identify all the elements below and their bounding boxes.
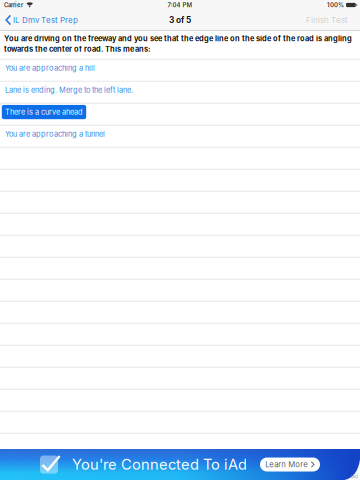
staticText: 100% <box>327 1 344 9</box>
staticText: IL Dmv Test Prep <box>13 15 78 25</box>
button[interactable]: You're Connected To iAd <box>0 449 360 480</box>
staticText: You are approaching a tunnel <box>5 129 105 138</box>
staticText: 3 of 5 <box>169 15 191 25</box>
button[interactable]: There is a curve ahead <box>0 101 360 123</box>
staticText: There is a curve ahead <box>5 107 83 116</box>
staticText: iAd <box>351 474 358 479</box>
staticText: You are approaching a hill <box>5 63 95 72</box>
staticText: 7:04 PM <box>167 1 192 9</box>
button[interactable]: Finish Test <box>294 10 360 30</box>
button[interactable]: You are approaching a hill <box>0 57 360 79</box>
staticText: Carrier <box>4 1 23 9</box>
staticText: Lane is ending. Merge to the left lane. <box>5 85 133 94</box>
staticText: towards the center of road. This means: <box>4 45 150 54</box>
staticText: You're Connected To iAd <box>72 456 247 473</box>
staticText: Learn More <box>265 460 308 469</box>
button[interactable]: You are approaching a tunnel <box>0 123 360 145</box>
staticText: Finish Test <box>306 15 348 25</box>
button[interactable]: IL Dmv Test Prep <box>0 10 84 30</box>
staticText: You are driving on the freeway and you s… <box>4 34 352 43</box>
button[interactable]: Lane is ending. Merge to the left lane. <box>0 79 360 101</box>
